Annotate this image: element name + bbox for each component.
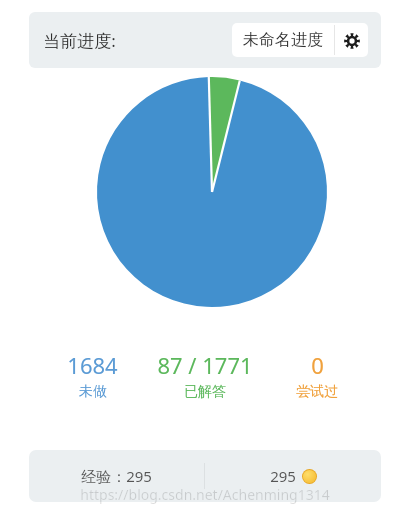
button[interactable]: 经验：295 bbox=[29, 450, 204, 502]
button[interactable]: Settings bbox=[335, 24, 368, 57]
staticText: 0 bbox=[311, 350, 324, 380]
button[interactable]: 未命名进度 bbox=[232, 23, 334, 57]
button[interactable]: 295 bbox=[205, 450, 381, 502]
staticText: 当前进度: bbox=[43, 29, 116, 52]
staticText: 已解答 bbox=[184, 383, 226, 401]
button[interactable]: 1684 bbox=[44, 350, 141, 401]
staticText: 未命名进度 bbox=[243, 30, 323, 50]
button[interactable]: 87 / 1771 bbox=[141, 350, 268, 401]
staticText: 1684 bbox=[67, 350, 118, 380]
button[interactable]: 0 bbox=[268, 350, 366, 401]
staticText: 87 / 1771 bbox=[157, 350, 253, 380]
staticText: 未做 bbox=[79, 383, 107, 401]
staticText: 295 bbox=[270, 466, 296, 486]
staticText: 尝试过 bbox=[296, 383, 338, 401]
staticText: 经验：295 bbox=[81, 466, 152, 486]
staticText: https://blog.csdn.net/Achenming1314 bbox=[80, 485, 330, 504]
